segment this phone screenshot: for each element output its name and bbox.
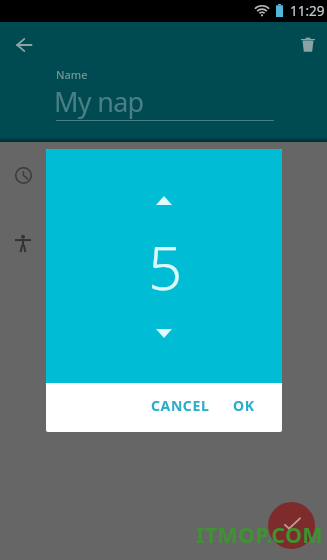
- button[interactable]: Delete: [289, 26, 326, 63]
- staticText: 11:29: [290, 2, 325, 20]
- staticText: My nap: [54, 83, 144, 120]
- staticText: Name: [56, 67, 88, 82]
- button[interactable]: Increase: [146, 183, 181, 217]
- staticText: OK: [233, 396, 255, 415]
- staticText: 5: [148, 226, 183, 308]
- button[interactable]: Back: [5, 26, 42, 63]
- staticText: CANCEL: [151, 396, 210, 415]
- staticText: ITMOP.COM: [196, 520, 323, 549]
- button[interactable]: OK: [226, 389, 262, 422]
- button[interactable]: Save: [268, 502, 315, 549]
- button[interactable]: Decrease: [146, 316, 181, 350]
- button[interactable]: CANCEL: [144, 389, 217, 422]
